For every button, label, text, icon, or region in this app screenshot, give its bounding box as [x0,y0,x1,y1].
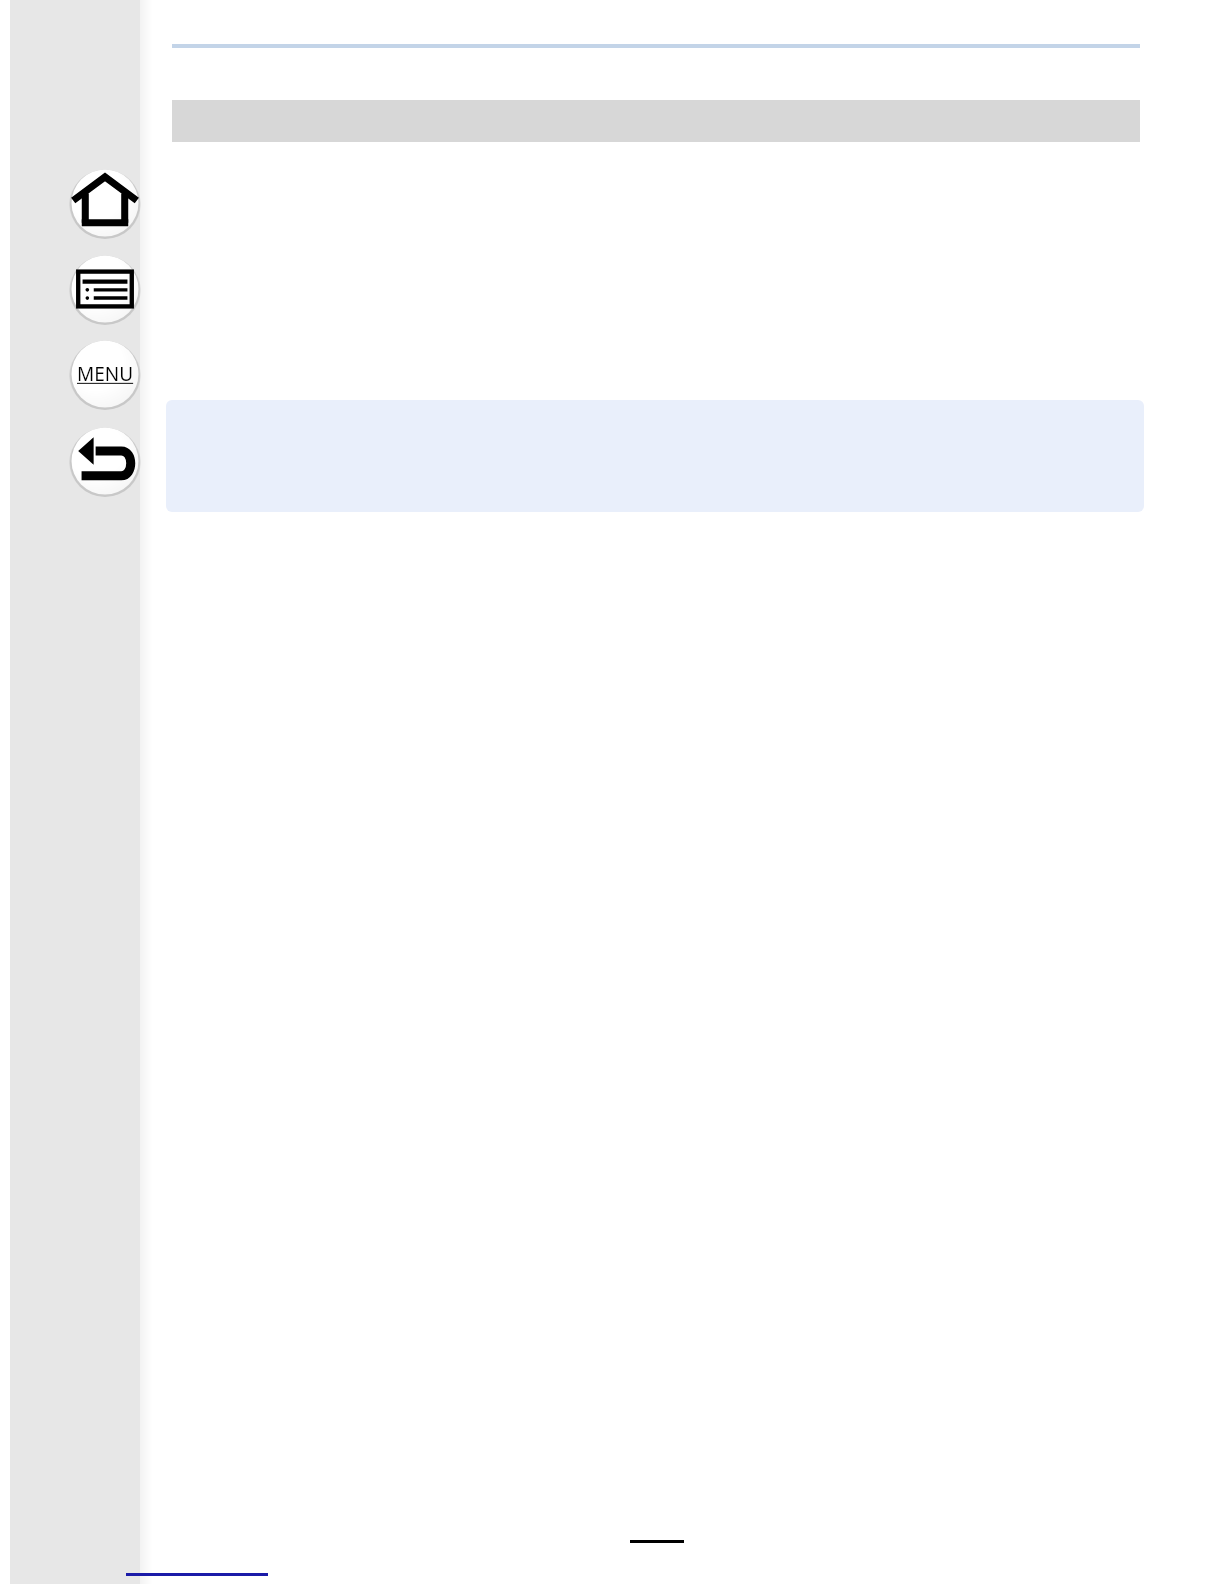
button[interactable]: Home [69,167,141,239]
staticText: MENU [77,361,134,387]
button[interactable]: Back [69,425,141,497]
button[interactable]: Contents [69,253,141,325]
button[interactable]: Menu [69,338,141,410]
